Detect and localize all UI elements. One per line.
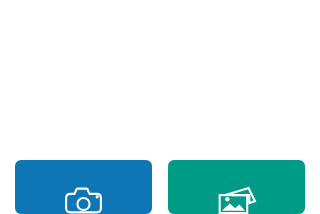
button[interactable]: Take photo with camera — [15, 160, 152, 214]
button[interactable]: Choose from gallery — [168, 160, 305, 214]
